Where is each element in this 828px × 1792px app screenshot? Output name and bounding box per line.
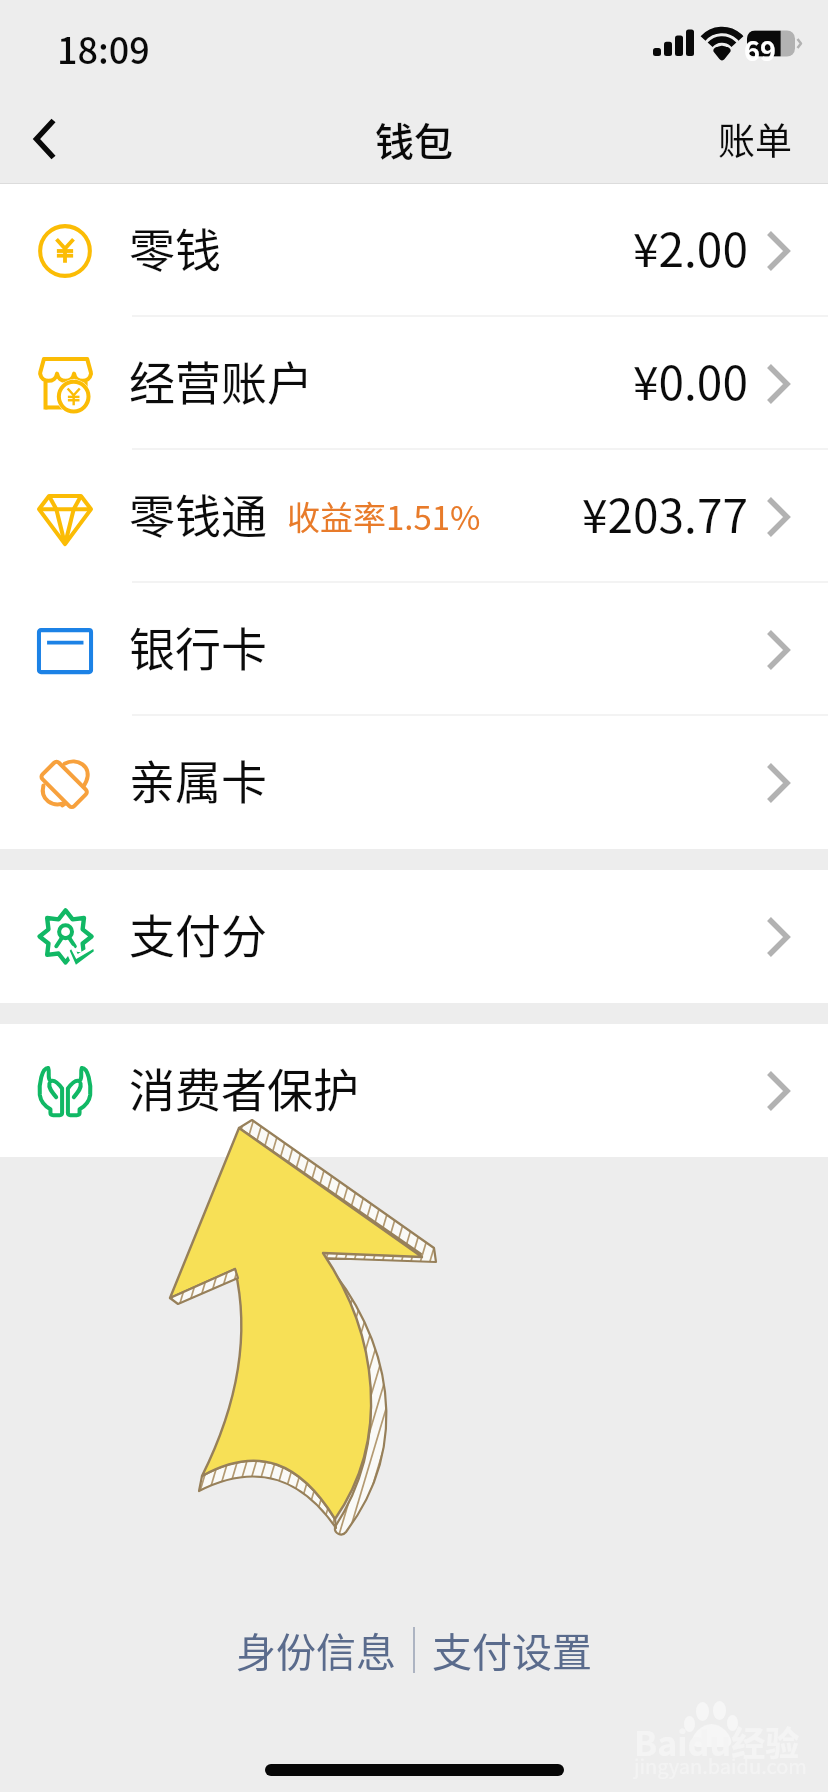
button[interactable]: 银行卡 (0, 583, 828, 716)
staticText: 经营账户 (129, 347, 313, 414)
staticText: 亲属卡 (129, 746, 267, 813)
button[interactable]: 消费者保护 (0, 1024, 828, 1157)
staticText: 身份信息 (236, 1621, 396, 1679)
staticText: 钱包 (375, 111, 454, 167)
staticText: 收益率1.51% (287, 492, 481, 540)
staticText: 银行卡 (129, 613, 267, 680)
staticText: ¥203.77 (582, 480, 748, 547)
button[interactable]: 经营账户 (0, 317, 828, 450)
staticText: 69 (744, 30, 776, 69)
staticText: ¥0.00 (633, 347, 748, 414)
button[interactable]: 零钱 (0, 184, 828, 317)
staticText: 支付设置 (432, 1621, 592, 1679)
staticText: 支付分 (129, 900, 267, 967)
staticText: 18:09 (57, 22, 150, 74)
button[interactable]: 支付设置 (415, 1611, 609, 1689)
staticText: 零钱通 (129, 480, 267, 547)
button[interactable]: 亲属卡 (0, 716, 828, 849)
button[interactable]: Back (0, 94, 92, 184)
staticText: Baidu经验 (634, 1717, 800, 1766)
staticText: 消费者保护 (129, 1054, 359, 1121)
button[interactable]: 支付分 (0, 870, 828, 1003)
staticText: ¥2.00 (633, 214, 748, 281)
button[interactable]: 身份信息 (219, 1611, 413, 1689)
staticText: 账单 (718, 112, 792, 166)
staticText: 零钱 (129, 214, 221, 281)
button[interactable]: 账单 (682, 94, 828, 184)
button[interactable]: 零钱通 (0, 450, 828, 583)
